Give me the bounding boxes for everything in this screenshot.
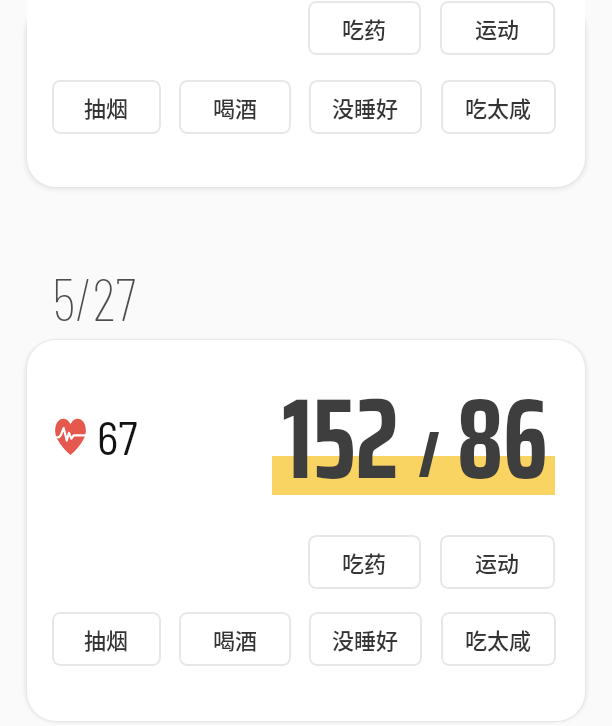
button[interactable]: Heart rate xyxy=(27,340,585,721)
button[interactable]: 没睡好 xyxy=(309,612,422,666)
staticText: 86 xyxy=(457,349,548,528)
staticText: 运动 xyxy=(475,12,520,44)
staticText: 152 xyxy=(282,349,399,528)
staticText: 抽烟 xyxy=(84,623,129,655)
staticText: 运动 xyxy=(475,546,520,578)
button[interactable]: 喝酒 xyxy=(179,80,291,134)
staticText: 没睡好 xyxy=(332,623,399,655)
staticText: 吃太咸 xyxy=(465,623,532,655)
button[interactable]: 吃药 xyxy=(308,535,421,589)
staticText: 吃太咸 xyxy=(465,91,532,123)
button[interactable]: 抽烟 xyxy=(52,612,161,666)
button[interactable]: 吃药 xyxy=(308,1,421,55)
button[interactable]: 吃太咸 xyxy=(441,612,556,666)
button[interactable]: 抽烟 xyxy=(52,80,161,134)
staticText: 喝酒 xyxy=(213,91,258,123)
button[interactable]: 没睡好 xyxy=(309,80,422,134)
staticText: 5/27 xyxy=(52,261,136,333)
button[interactable]: 运动 xyxy=(440,1,555,55)
staticText: 吃药 xyxy=(342,12,387,44)
button[interactable]: 吃药 xyxy=(27,0,585,187)
staticText: 喝酒 xyxy=(213,623,258,655)
button[interactable]: 运动 xyxy=(440,535,555,589)
staticText: 没睡好 xyxy=(332,91,399,123)
staticText: 抽烟 xyxy=(84,91,129,123)
button[interactable]: 喝酒 xyxy=(179,612,291,666)
button[interactable]: 吃太咸 xyxy=(441,80,556,134)
other: Heart rate xyxy=(55,418,86,455)
staticText: 67 xyxy=(97,409,138,464)
staticText: 吃药 xyxy=(342,546,387,578)
